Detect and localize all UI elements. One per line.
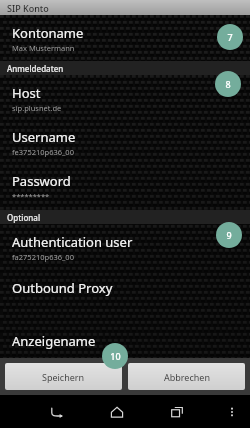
- staticText: Anmeldedaten: [7, 63, 64, 74]
- button[interactable]: Speichern: [5, 363, 122, 390]
- staticText: 8: [225, 78, 231, 90]
- staticText: Password: [12, 172, 71, 190]
- staticText: Outbound Proxy: [12, 279, 113, 297]
- button[interactable]: Authentication user: [0, 224, 250, 271]
- staticText: Max Mustermann: [12, 43, 75, 53]
- button[interactable]: Anzeigename: [0, 306, 250, 356]
- staticText: SIP Konto: [7, 2, 49, 14]
- staticText: Username: [12, 128, 76, 146]
- button[interactable]: Kontoname: [0, 15, 250, 61]
- staticText: Authentication user: [12, 233, 133, 251]
- staticText: *********: [12, 191, 50, 201]
- staticText: Kontoname: [12, 24, 84, 42]
- button[interactable]: Home: [100, 395, 134, 428]
- staticText: 9: [226, 229, 232, 241]
- staticText: 10: [110, 350, 121, 362]
- staticText: sip.plusnet.de: [12, 103, 62, 113]
- staticText: Optional: [7, 212, 41, 223]
- staticText: Host: [12, 84, 41, 102]
- staticText: fe375210p636_00: [12, 147, 74, 157]
- button[interactable]: More options: [220, 400, 244, 424]
- button[interactable]: Host: [0, 75, 250, 122]
- staticText: Anzeigename: [12, 332, 96, 350]
- button[interactable]: Outbound Proxy: [0, 271, 250, 306]
- staticText: Speichern: [42, 371, 85, 383]
- button[interactable]: Back: [40, 395, 74, 428]
- button[interactable]: Password: [0, 166, 250, 210]
- button[interactable]: Abbrechen: [128, 363, 245, 390]
- button[interactable]: Username: [0, 122, 250, 166]
- staticText: 7: [227, 31, 233, 43]
- staticText: Abbrechen: [164, 371, 210, 383]
- staticText: fa275210p636_00: [12, 252, 74, 262]
- button[interactable]: Recent apps: [160, 395, 194, 428]
